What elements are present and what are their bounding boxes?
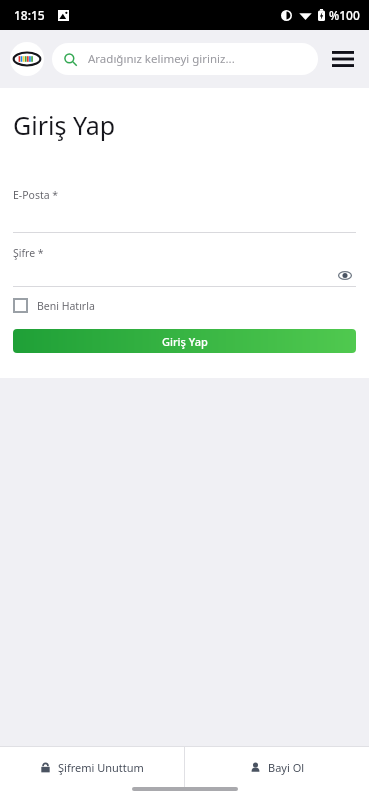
staticText: Bayi Ol: [268, 760, 305, 775]
staticText: Giriş Yap: [13, 108, 116, 142]
button[interactable]: Şifremi Unuttum: [0, 747, 184, 787]
staticText: Giriş Yap: [162, 334, 208, 349]
staticText: Beni Hatırla: [37, 299, 95, 313]
staticText: %100: [329, 7, 360, 23]
staticText: Şifre *: [13, 246, 44, 260]
staticText: Şifremi Unuttum: [58, 760, 144, 775]
staticText: E-Posta *: [13, 188, 59, 202]
button[interactable]: Beni Hatırla: [13, 298, 95, 313]
staticText: 18:15: [14, 7, 45, 23]
button[interactable]: Show password: [334, 264, 356, 286]
button[interactable]: Aradığınız kelimeyi giriniz...: [52, 43, 318, 75]
button[interactable]: Logo: [10, 42, 44, 76]
staticText: Aradığınız kelimeyi giriniz...: [88, 51, 235, 67]
button[interactable]: Giriş Yap: [13, 329, 356, 353]
button[interactable]: Bayi Ol: [185, 747, 369, 787]
button[interactable]: Menu: [327, 43, 359, 75]
